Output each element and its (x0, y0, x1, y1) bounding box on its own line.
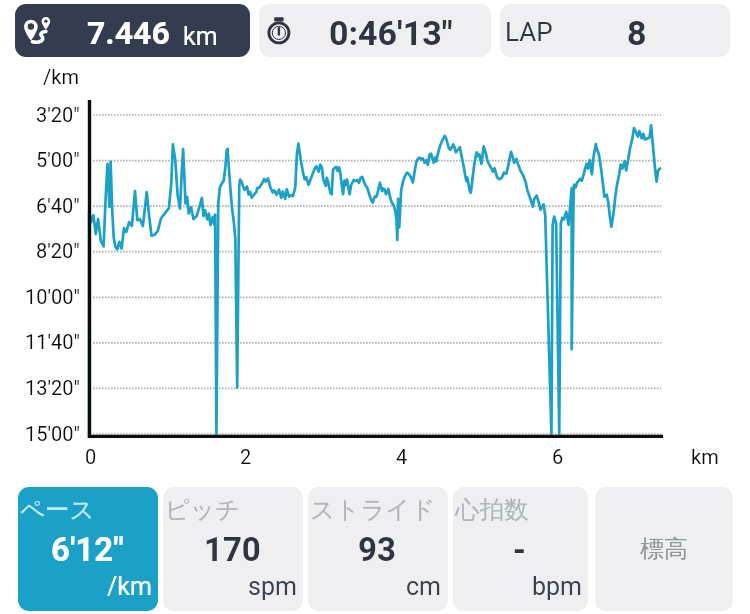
staticText: 6 (552, 445, 564, 468)
button[interactable]: ペース (18, 487, 158, 611)
staticText: /km (43, 65, 79, 88)
staticText: km (691, 445, 719, 468)
staticText: 0 (85, 445, 97, 468)
button[interactable]: 標高 (595, 487, 733, 611)
staticText: 15'00" (25, 422, 80, 445)
staticText: 11'40" (25, 330, 80, 353)
staticText: 3'20" (36, 103, 80, 126)
staticText: 8'20" (36, 239, 80, 262)
staticText: bpm (532, 572, 582, 601)
staticText: ピッチ (165, 494, 241, 525)
staticText: 4 (396, 445, 408, 468)
staticText: 5'00" (36, 148, 80, 171)
staticText: 93 (358, 530, 396, 569)
staticText: 13'20" (25, 376, 80, 399)
staticText: 7.446 (87, 14, 170, 52)
staticText: LAP (505, 17, 553, 47)
button[interactable]: 心拍数 (453, 487, 588, 611)
staticText: ペース (20, 494, 95, 525)
staticText: - (513, 530, 526, 569)
button[interactable]: LAP (500, 4, 730, 57)
button[interactable]: ピッチ (163, 487, 303, 611)
button[interactable]: 7.446 (15, 4, 250, 57)
button[interactable]: 0:46'13" (259, 4, 491, 57)
staticText: spm (248, 572, 297, 601)
button[interactable]: ストライド (308, 487, 448, 611)
staticText: km (183, 22, 218, 51)
staticText: cm (406, 572, 442, 601)
staticText: 0:46'13" (329, 13, 453, 53)
staticText: /km (107, 572, 152, 601)
staticText: 6'12" (51, 530, 124, 569)
staticText: 2 (240, 445, 252, 468)
staticText: 心拍数 (455, 494, 529, 525)
staticText: 標高 (640, 534, 688, 564)
staticText: 8 (627, 13, 647, 53)
staticText: ストライド (310, 494, 436, 525)
staticText: 10'00" (25, 285, 80, 308)
staticText: 170 (204, 530, 261, 569)
staticText: 6'40" (36, 194, 80, 217)
